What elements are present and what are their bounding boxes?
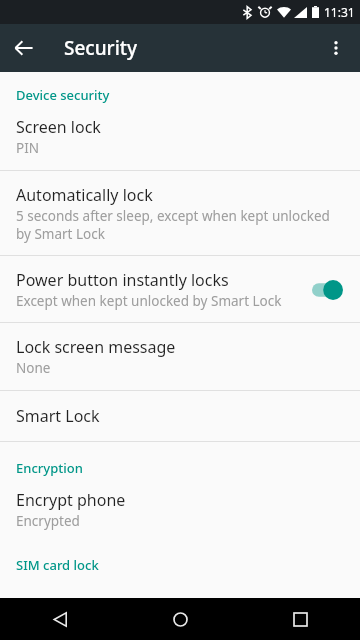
staticText: PIN bbox=[16, 139, 40, 157]
button[interactable]: Lock screen message bbox=[0, 323, 360, 390]
staticText: Encryption bbox=[16, 459, 83, 477]
staticText: Security bbox=[64, 35, 138, 61]
staticText: Lock screen message bbox=[16, 336, 176, 358]
button[interactable]: Smart Lock bbox=[0, 391, 360, 441]
staticText: Except when kept unlocked by Smart Lock bbox=[16, 292, 282, 310]
button[interactable]: Recent apps bbox=[240, 598, 360, 640]
staticText: 5 seconds after sleep, except when kept … bbox=[16, 207, 344, 243]
staticText: Screen lock bbox=[16, 116, 101, 138]
button[interactable]: Automatically lock bbox=[0, 171, 360, 255]
button[interactable]: Screen lock bbox=[0, 106, 360, 170]
staticText: Automatically lock bbox=[16, 184, 153, 206]
staticText: Power button instantly locks bbox=[16, 269, 229, 291]
staticText: None bbox=[16, 359, 51, 377]
staticText: Device security bbox=[16, 86, 110, 104]
staticText: Encrypted bbox=[16, 512, 80, 530]
button[interactable]: More options bbox=[316, 28, 356, 68]
button[interactable]: Back bbox=[0, 598, 120, 640]
button[interactable]: Power button instantly locks toggle bbox=[312, 279, 346, 301]
staticText: SIM card lock bbox=[16, 556, 99, 574]
staticText: Encrypt phone bbox=[16, 489, 126, 511]
button[interactable]: Back bbox=[4, 28, 44, 68]
button[interactable]: Power button instantly locks bbox=[0, 256, 360, 322]
staticText: Smart Lock bbox=[16, 405, 100, 427]
button[interactable]: Encrypt phone bbox=[0, 479, 360, 543]
staticText: 11:31 bbox=[324, 4, 355, 20]
button[interactable]: Home bbox=[120, 598, 240, 640]
